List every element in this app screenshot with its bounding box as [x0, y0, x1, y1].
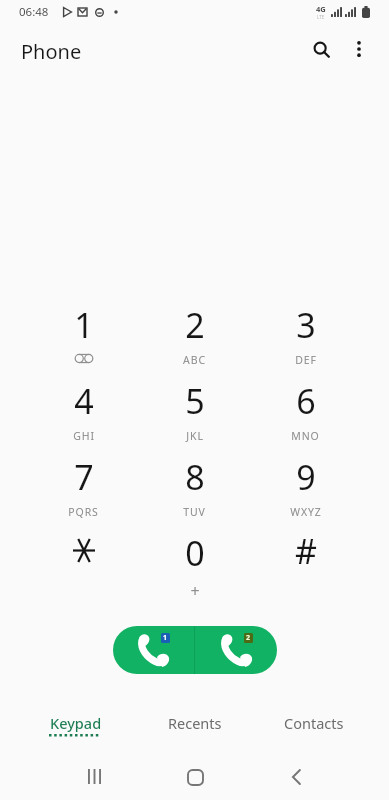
button[interactable]: Recent apps: [70, 753, 118, 799]
staticText: 2: [246, 633, 251, 643]
button[interactable]: 8: [139, 439, 250, 515]
staticText: 06:48: [19, 4, 49, 20]
button[interactable]: 1: [28, 287, 139, 363]
button[interactable]: Recents: [135, 713, 254, 749]
button[interactable]: 3: [250, 287, 361, 363]
button[interactable]: #: [250, 515, 361, 591]
button[interactable]: Contacts: [254, 713, 373, 749]
staticText: 7: [74, 454, 94, 500]
button[interactable]: 0: [139, 515, 250, 591]
staticText: JKL: [186, 429, 204, 443]
staticText: MNO: [291, 429, 320, 443]
staticText: +: [190, 580, 200, 602]
staticText: Phone: [21, 38, 82, 65]
button[interactable]: Back: [272, 754, 320, 800]
button[interactable]: [28, 515, 139, 591]
staticText: ABC: [183, 353, 206, 367]
button[interactable]: Search: [299, 27, 343, 71]
staticText: Keypad: [50, 713, 102, 733]
staticText: LTE: [317, 14, 325, 20]
button[interactable]: 9: [250, 439, 361, 515]
staticText: GHI: [73, 429, 95, 443]
staticText: TUV: [183, 505, 206, 519]
staticText: DEF: [295, 353, 317, 367]
button[interactable]: Home: [171, 754, 219, 800]
button[interactable]: 7: [28, 439, 139, 515]
staticText: Recents: [168, 713, 222, 733]
staticText: 5: [185, 378, 205, 424]
staticText: 0: [185, 530, 205, 576]
staticText: #: [295, 528, 317, 574]
staticText: PQRS: [68, 505, 99, 519]
button[interactable]: Call with SIM 1: [113, 626, 194, 674]
button[interactable]: Keypad: [16, 713, 135, 749]
staticText: 1: [74, 302, 94, 348]
button[interactable]: 5: [139, 363, 250, 439]
staticText: 3: [296, 302, 316, 348]
staticText: 4G: [316, 4, 326, 14]
button[interactable]: 4: [28, 363, 139, 439]
button[interactable]: More options: [338, 28, 380, 70]
staticText: 1: [163, 633, 168, 643]
staticText: 4: [74, 378, 94, 424]
staticText: 8: [185, 454, 205, 500]
staticText: 2: [185, 302, 205, 348]
staticText: 6: [296, 378, 316, 424]
button[interactable]: Call with SIM 2: [195, 626, 277, 674]
staticText: Contacts: [284, 713, 344, 733]
button[interactable]: 2: [139, 287, 250, 363]
staticText: WXYZ: [290, 505, 322, 519]
button[interactable]: 6: [250, 363, 361, 439]
staticText: 9: [296, 454, 316, 500]
